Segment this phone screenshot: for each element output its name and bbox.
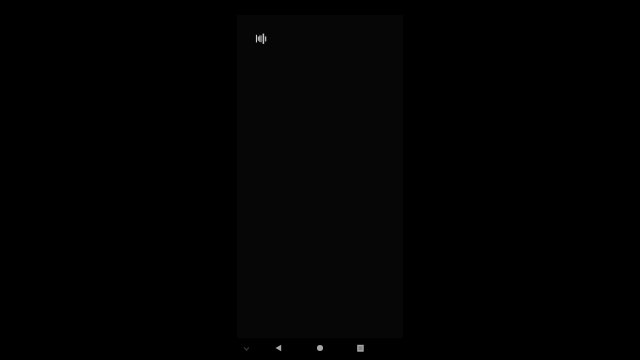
button[interactable]: Equalizer bbox=[248, 26, 274, 52]
button[interactable]: Home bbox=[309, 337, 331, 359]
button[interactable]: Hide keyboard bbox=[235, 337, 257, 359]
button[interactable]: Back bbox=[267, 337, 289, 359]
button[interactable]: Recent apps bbox=[350, 337, 372, 359]
